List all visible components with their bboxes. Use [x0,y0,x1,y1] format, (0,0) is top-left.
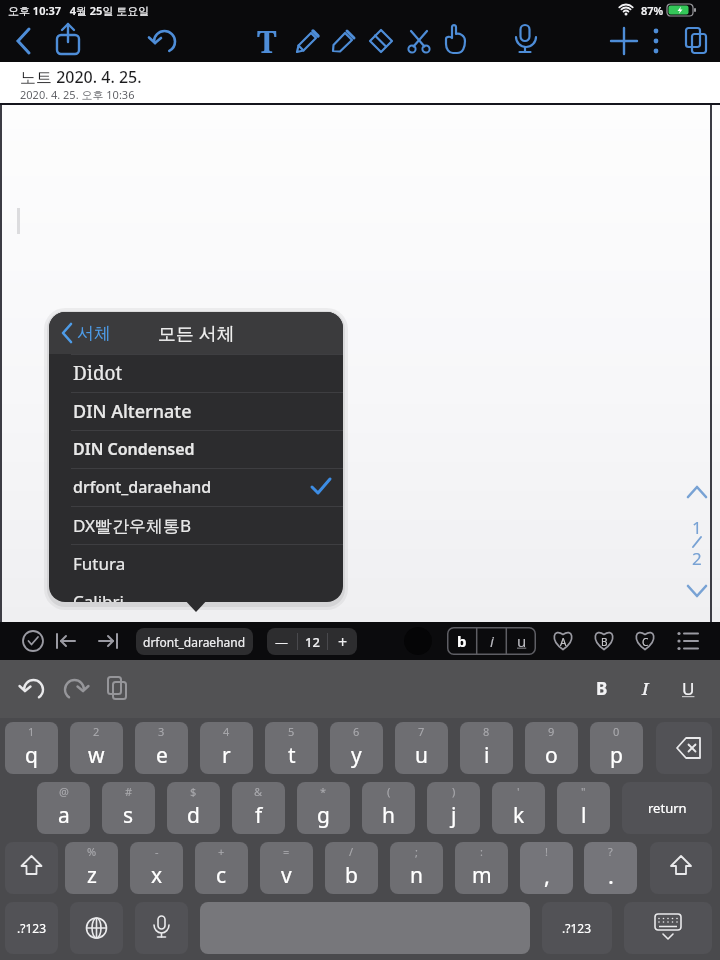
button[interactable] [400,22,438,60]
button[interactable] [656,722,712,774]
button[interactable]: @ [37,782,90,834]
button[interactable] [650,842,712,894]
staticText: .?123 [17,920,47,936]
button[interactable]: ' [492,782,545,834]
button[interactable]: ) [427,782,480,834]
button[interactable]: .?123 [5,902,58,954]
button[interactable] [362,22,400,60]
button[interactable] [50,21,86,61]
button[interactable]: I [625,670,665,706]
button[interactable]: 1 [677,515,717,539]
staticText: q [25,741,38,770]
button[interactable]: % [65,842,118,894]
button[interactable] [606,23,642,59]
button[interactable]: 2 [70,722,123,774]
button[interactable]: 7 [395,722,448,774]
staticText: : [480,844,483,859]
staticText: $ [190,784,197,799]
button[interactable]: DX빨간우체통B [49,506,343,544]
button[interactable] [135,902,188,954]
button[interactable]: $ [167,782,220,834]
button[interactable] [624,902,712,954]
button[interactable]: = [260,842,313,894]
staticText: C [642,635,649,649]
button[interactable] [544,623,582,659]
button[interactable]: 3 [135,722,188,774]
button[interactable]: : [455,842,508,894]
staticText: drfont_daraehand [73,476,212,498]
button[interactable] [49,626,83,656]
button[interactable] [585,623,623,659]
button[interactable]: 서체 [49,312,343,354]
button[interactable] [289,22,327,60]
button[interactable] [15,670,51,706]
staticText: 노트 2020. 4. 25. [20,66,142,88]
button[interactable]: # [102,782,155,834]
button[interactable] [672,626,704,656]
button[interactable]: drfont_daraehand [49,468,343,506]
button[interactable] [9,23,39,59]
button[interactable]: 8 [460,722,513,774]
button[interactable] [18,626,48,656]
button[interactable] [91,626,125,656]
button[interactable]: 4 [200,722,253,774]
button[interactable]: + [328,628,357,655]
staticText: f [255,801,263,830]
button[interactable] [678,22,714,60]
button[interactable]: Calibri [49,582,343,602]
button[interactable] [5,842,58,894]
staticText: t [288,741,296,770]
button[interactable] [437,22,475,60]
button[interactable]: * [297,782,350,834]
button[interactable]: 2 [677,546,717,570]
button[interactable]: 6 [330,722,383,774]
button[interactable]: U [668,670,708,706]
button[interactable]: ; [390,842,443,894]
button[interactable]: ! [520,842,573,894]
button[interactable]: b [447,627,477,655]
button[interactable]: B [582,670,622,706]
staticText: drfont_daraehand [143,634,246,650]
button[interactable]: u [507,627,536,655]
button[interactable] [70,902,123,954]
button[interactable]: " [557,782,610,834]
button[interactable]: .?123 [542,902,612,954]
button[interactable]: 0 [590,722,643,774]
button[interactable]: 9 [525,722,578,774]
button[interactable]: — [267,628,297,655]
button[interactable]: ? [584,842,637,894]
button[interactable] [682,479,712,505]
staticText: r [222,741,231,770]
button[interactable]: Didot [49,354,343,392]
button[interactable]: T [245,19,289,63]
button[interactable]: DIN Alternate [49,392,343,430]
button[interactable]: + [195,842,248,894]
button[interactable]: return [622,782,712,834]
button[interactable]: Futura [49,544,343,582]
button[interactable]: DIN Condensed [49,430,343,468]
button[interactable] [626,623,664,659]
button[interactable]: drfont_daraehand [136,628,253,655]
button[interactable]: 5 [265,722,318,774]
button[interactable] [644,23,668,59]
button[interactable] [507,21,543,61]
button[interactable] [682,578,712,604]
button[interactable]: - [130,842,183,894]
staticText: & [254,784,263,799]
button[interactable] [325,22,363,60]
button[interactable] [146,23,182,59]
button[interactable]: / [325,842,378,894]
staticText: u [415,741,428,770]
button[interactable]: & [232,782,285,834]
button[interactable] [57,319,77,347]
staticText: Calibri [73,590,124,602]
staticText: , [544,860,550,890]
button[interactable]: 1 [5,722,58,774]
button[interactable] [57,670,93,706]
button[interactable]: i [477,627,507,655]
staticText: Futura [73,552,126,575]
button[interactable]: ( [362,782,415,834]
button[interactable] [99,670,135,706]
